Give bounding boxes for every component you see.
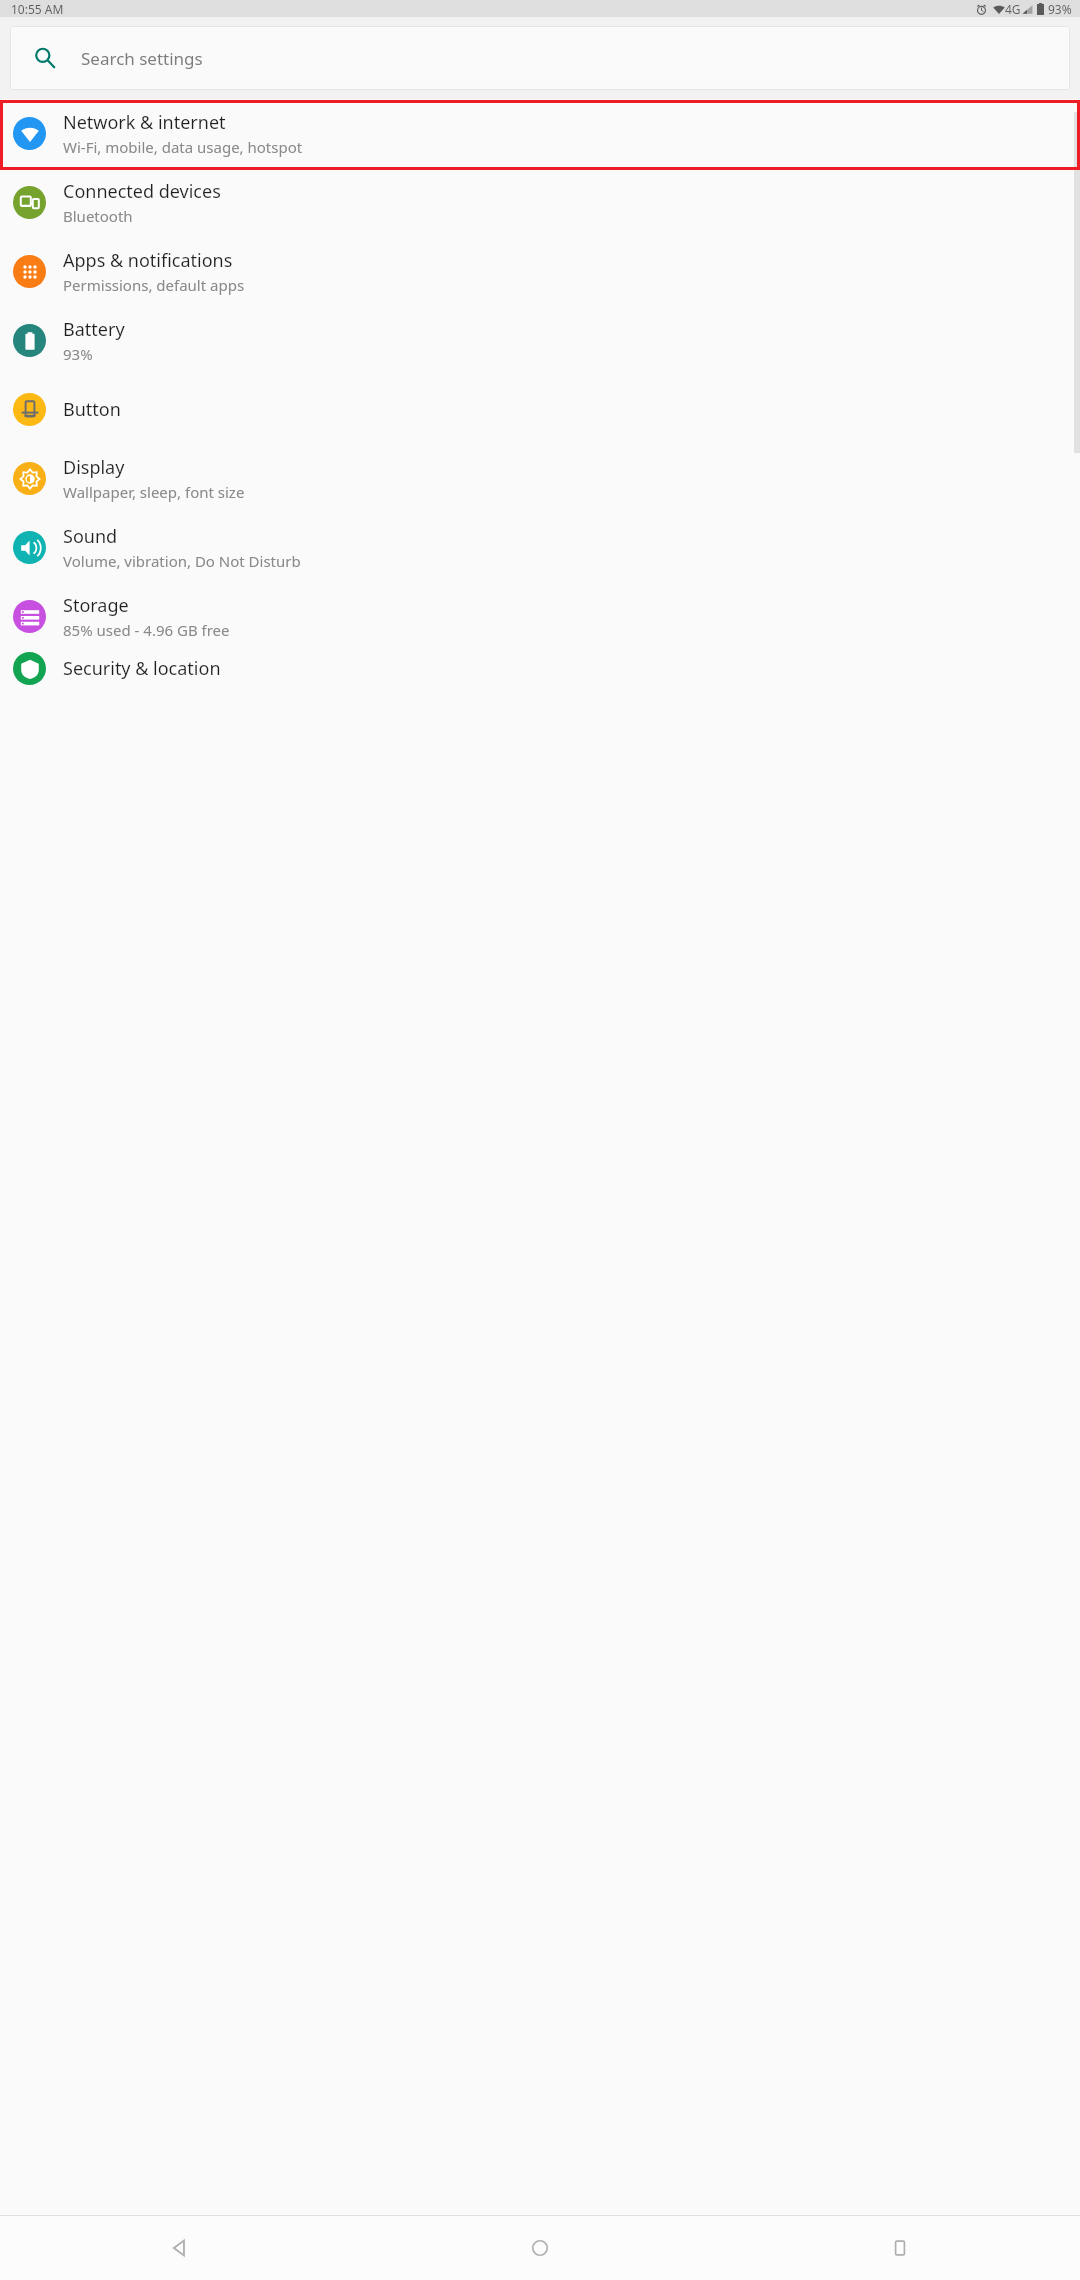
- staticText: Permissions, default apps: [63, 275, 245, 295]
- staticText: Wallpaper, sleep, font size: [63, 482, 245, 502]
- button[interactable]: Button: [0, 375, 1080, 444]
- staticText: 93%: [63, 344, 93, 364]
- staticText: Connected devices: [63, 179, 221, 204]
- button[interactable]: Network & internet: [0, 99, 1080, 168]
- staticText: Security & location: [63, 656, 221, 681]
- button[interactable]: Battery: [0, 306, 1080, 375]
- staticText: Apps & notifications: [63, 248, 233, 273]
- staticText: Network & internet: [63, 110, 226, 135]
- staticText: Wi-Fi, mobile, data usage, hotspot: [63, 137, 303, 157]
- staticText: 10:55 AM: [11, 1, 64, 17]
- button[interactable]: Recents: [720, 2216, 1080, 2280]
- button[interactable]: Apps & notifications: [0, 237, 1080, 306]
- staticText: Search settings: [81, 47, 203, 70]
- button[interactable]: Storage: [0, 582, 1080, 651]
- button[interactable]: Back: [0, 2216, 360, 2280]
- staticText: 93%: [1048, 1, 1072, 17]
- staticText: 4G: [1005, 1, 1021, 17]
- staticText: Display: [63, 455, 125, 480]
- staticText: Bluetooth: [63, 206, 133, 226]
- button[interactable]: Home: [360, 2216, 720, 2280]
- button[interactable]: Search settings: [10, 26, 1070, 90]
- staticText: Storage: [63, 593, 129, 618]
- staticText: 85% used - 4.96 GB free: [63, 620, 230, 640]
- button[interactable]: Sound: [0, 513, 1080, 582]
- button[interactable]: Display: [0, 444, 1080, 513]
- staticText: Volume, vibration, Do Not Disturb: [63, 551, 301, 571]
- staticText: Button: [63, 397, 121, 422]
- button[interactable]: Connected devices: [0, 168, 1080, 237]
- button[interactable]: Security & location: [0, 651, 1080, 685]
- staticText: Battery: [63, 317, 125, 342]
- staticText: Sound: [63, 524, 118, 549]
